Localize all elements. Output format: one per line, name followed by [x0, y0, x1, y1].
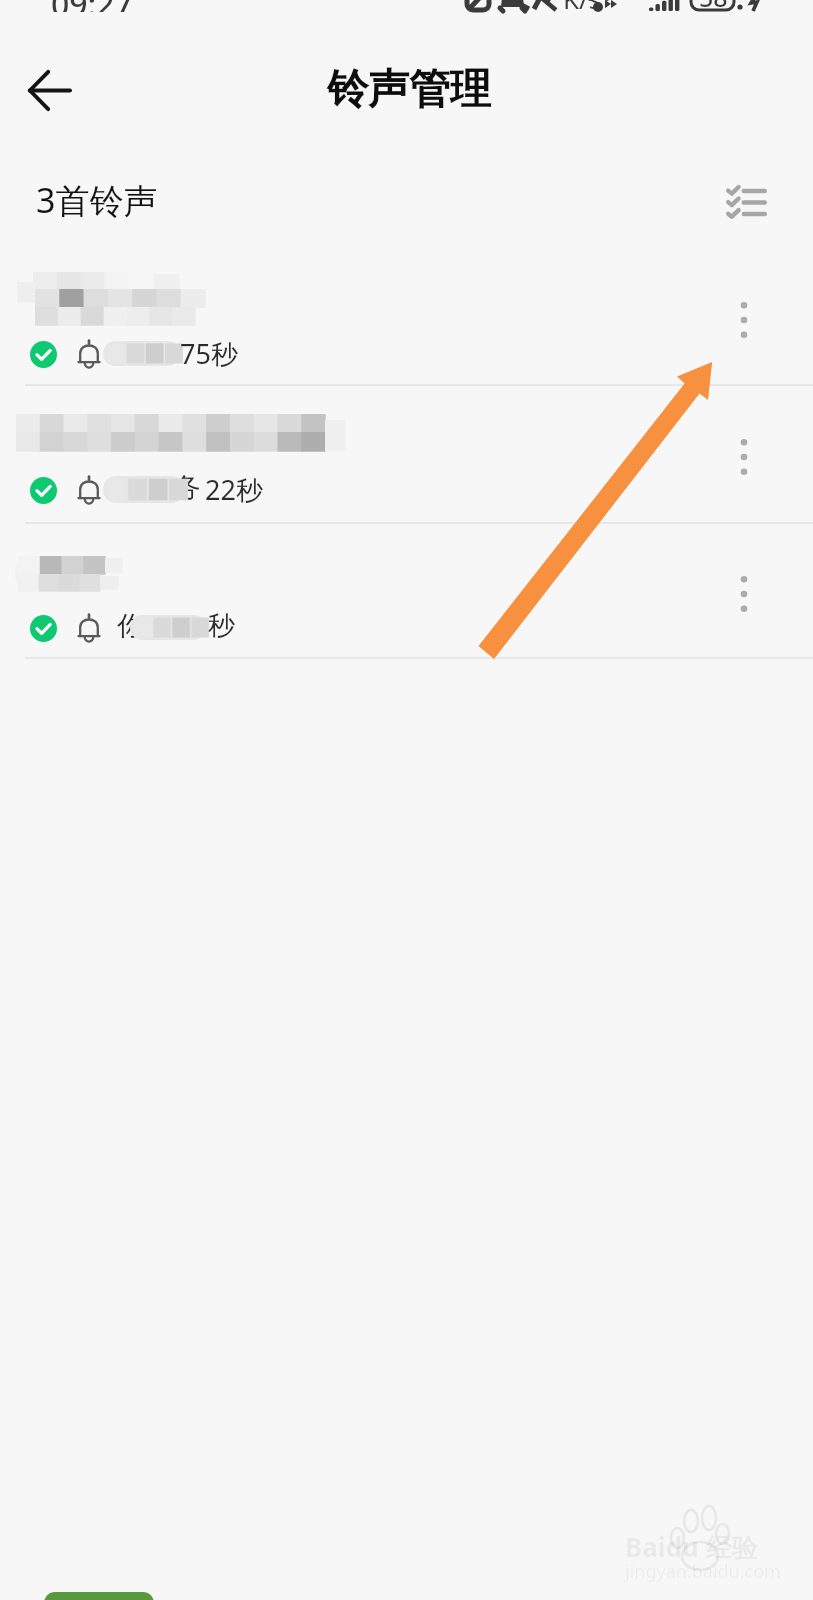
button[interactable]: Batch select [711, 166, 783, 238]
button[interactable]: More options [707, 557, 781, 631]
staticText: 务 [174, 471, 201, 505]
button[interactable]: Back [10, 51, 88, 129]
staticText: 58 [699, 0, 728, 10]
button[interactable]: 务 [0, 385, 813, 523]
staticText: 75秒 [180, 335, 238, 372]
staticText: 你 [117, 609, 144, 643]
button[interactable]: More options [707, 420, 781, 494]
staticText: jingyan.baidu.com [625, 1559, 781, 1584]
staticText: 3首铃声 [36, 177, 158, 223]
button[interactable]: 你 [0, 523, 813, 658]
button[interactable] [44, 1592, 154, 1600]
staticText: K/s [563, 0, 602, 11]
staticText: Baidu 经验 [625, 1529, 758, 1565]
button[interactable]: 75秒 [0, 248, 813, 385]
staticText: 09:27 [51, 0, 133, 12]
staticText: 铃声管理 [327, 64, 491, 116]
staticText: 秒 [208, 609, 235, 643]
staticText: 22秒 [205, 471, 263, 508]
button[interactable]: More options [707, 283, 781, 357]
